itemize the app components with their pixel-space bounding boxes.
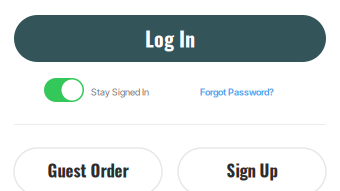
staticText: Guest Order [47,158,128,182]
staticText: Forgot Password? [200,86,274,98]
staticText: Sign Up [226,158,277,182]
staticText: Log In [145,24,195,53]
button[interactable]: Guest Order [14,148,162,191]
button[interactable]: Sign Up [178,148,326,191]
button[interactable]: Log In [14,15,326,62]
staticText: Stay Signed In [91,86,149,98]
button[interactable]: Stay Signed In [44,78,149,102]
button[interactable]: Forgot Password? [200,82,274,98]
